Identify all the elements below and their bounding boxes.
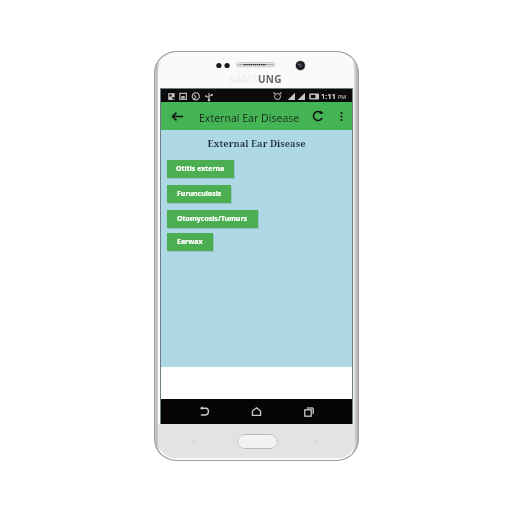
- button[interactable]: Furunculosis: [167, 185, 232, 204]
- staticText: UNG: [258, 72, 282, 86]
- button[interactable]: Recent apps: [294, 399, 324, 424]
- staticText: Furunculosis: [177, 189, 222, 199]
- staticText: Otitis externa: [176, 164, 225, 174]
- button[interactable]: Otomycosis/Tumurs: [167, 210, 259, 229]
- staticText: 1:11: [321, 91, 337, 101]
- button[interactable]: More options: [332, 107, 350, 125]
- button[interactable]: Otitis externa: [167, 160, 235, 179]
- staticText: External Ear Disease: [199, 111, 300, 125]
- button[interactable]: Back: [189, 399, 219, 424]
- button[interactable]: Home button: [237, 434, 278, 449]
- staticText: Earwax: [177, 237, 203, 247]
- staticText: SAMSUNG: [229, 72, 282, 86]
- button[interactable]: Back: [166, 105, 188, 127]
- button[interactable]: Refresh: [307, 105, 329, 127]
- staticText: PM: [338, 93, 347, 100]
- staticText: External Ear Disease: [161, 137, 352, 150]
- staticText: Otomycosis/Tumurs: [177, 214, 248, 224]
- button[interactable]: Home: [241, 399, 271, 424]
- button[interactable]: Earwax: [167, 233, 214, 252]
